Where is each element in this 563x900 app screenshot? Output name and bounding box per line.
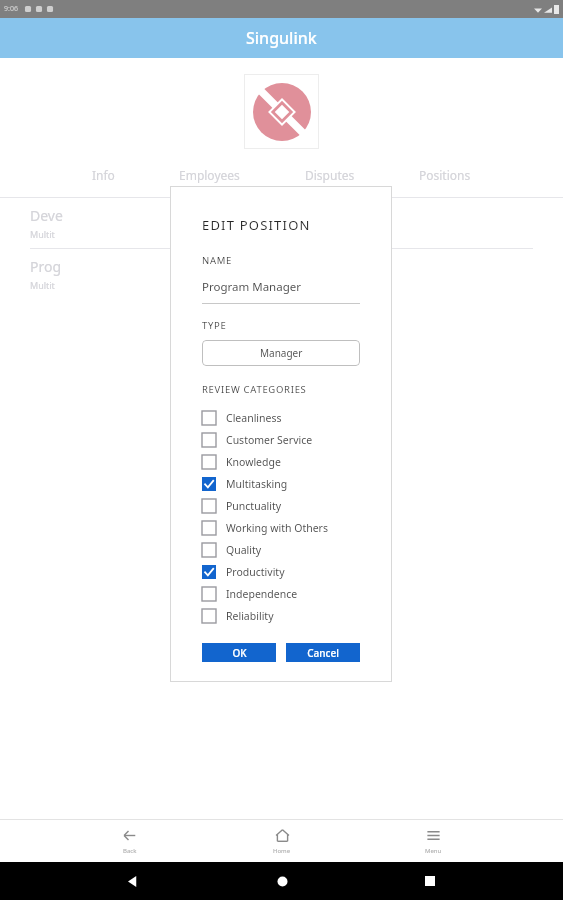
staticText: Punctuality xyxy=(226,499,282,513)
staticText: Multitasking xyxy=(226,477,288,491)
button[interactable]: Home xyxy=(259,824,305,858)
staticText: Back xyxy=(123,847,137,855)
button[interactable]: Cancel xyxy=(286,643,360,662)
button[interactable]: Disputes xyxy=(303,165,357,185)
button[interactable]: Knowledge xyxy=(202,451,360,473)
button[interactable]: Prog xyxy=(0,249,563,299)
button[interactable]: Multitasking xyxy=(202,473,360,495)
staticText: Customer Service xyxy=(226,433,313,447)
staticText: EDIT POSITION xyxy=(202,216,311,234)
button[interactable]: Menu xyxy=(411,824,456,858)
button[interactable]: OK xyxy=(202,643,276,662)
staticText: Prog xyxy=(30,257,62,276)
staticText: Program Manager xyxy=(202,279,301,295)
button[interactable]: Back xyxy=(107,824,152,858)
button[interactable]: Positions xyxy=(417,165,473,185)
button[interactable]: Deve xyxy=(0,198,563,248)
staticText: 9:06 xyxy=(4,4,18,14)
staticText: REVIEW CATEGORIES xyxy=(202,383,307,396)
staticText: Singulink xyxy=(246,27,317,49)
staticText: Knowledge xyxy=(226,455,281,469)
staticText: TYPE xyxy=(202,319,227,332)
button[interactable]: Customer Service xyxy=(202,429,360,451)
button[interactable]: Quality xyxy=(202,539,360,561)
button[interactable]: Home xyxy=(267,866,298,897)
staticText: Quality xyxy=(226,543,262,557)
staticText: Cleanliness xyxy=(226,411,282,425)
staticText: Productivity xyxy=(226,565,285,579)
staticText: Cancel xyxy=(307,646,339,660)
staticText: NAME xyxy=(202,254,232,267)
staticText: Info xyxy=(92,167,115,183)
staticText: Deve xyxy=(30,206,63,225)
button[interactable]: Info xyxy=(90,165,117,185)
staticText: Home xyxy=(273,847,291,855)
button[interactable]: Manager xyxy=(202,340,360,366)
staticText: Reliability xyxy=(226,609,274,623)
button[interactable]: Employees xyxy=(177,165,242,185)
staticText: Working with Others xyxy=(226,521,328,535)
staticText: Multit xyxy=(30,228,55,240)
staticText: Multit xyxy=(30,279,55,291)
staticText: Disputes xyxy=(305,167,355,183)
button[interactable]: Cleanliness xyxy=(202,407,360,429)
staticText: Independence xyxy=(226,587,298,601)
button[interactable]: Punctuality xyxy=(202,495,360,517)
staticText: Menu xyxy=(425,847,442,855)
button[interactable]: Independence xyxy=(202,583,360,605)
button[interactable]: Productivity xyxy=(202,561,360,583)
button[interactable]: Recents xyxy=(415,866,445,896)
button[interactable]: Back xyxy=(118,866,149,897)
button[interactable]: Reliability xyxy=(202,605,360,627)
button[interactable]: Working with Others xyxy=(202,517,360,539)
staticText: Positions xyxy=(419,167,471,183)
staticText: Manager xyxy=(260,346,303,360)
staticText: Employees xyxy=(179,167,240,183)
staticText: OK xyxy=(232,646,247,660)
